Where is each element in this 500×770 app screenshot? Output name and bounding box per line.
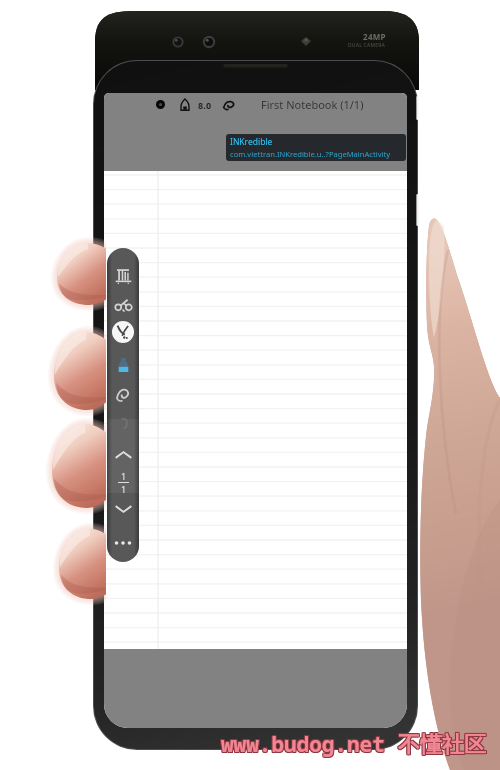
staticText: www.budog.net bbox=[222, 729, 386, 758]
button[interactable]: More options bbox=[107, 531, 139, 555]
staticText: INKredible bbox=[230, 136, 273, 148]
staticText: 不懂社区 bbox=[399, 732, 487, 760]
button[interactable]: Pen style bbox=[219, 95, 239, 115]
button[interactable]: First Notebook (1/1) bbox=[261, 97, 364, 112]
staticText: 不懂社区 bbox=[398, 730, 486, 758]
button[interactable]: Colour bbox=[152, 96, 169, 113]
button[interactable]: Undo bbox=[107, 411, 139, 435]
staticText: 不懂社区 bbox=[397, 732, 485, 760]
staticText: www.budog.net bbox=[221, 730, 385, 759]
staticText: 不懂社区 bbox=[397, 731, 485, 759]
button[interactable]: Pen nib bbox=[176, 96, 193, 113]
staticText: 不懂社区 bbox=[399, 731, 487, 759]
button[interactable]: 1 bbox=[107, 469, 139, 495]
staticText: 不懂社区 bbox=[398, 732, 486, 760]
button[interactable]: Previous page bbox=[107, 443, 139, 467]
button[interactable]: Notebooks bbox=[107, 263, 139, 287]
staticText: www.budog.net bbox=[221, 731, 385, 760]
button[interactable]: Lasso bbox=[107, 382, 139, 406]
staticText: 不懂社区 bbox=[399, 730, 487, 758]
button[interactable]: Pen bbox=[112, 321, 134, 343]
staticText: DUAL CAMERA bbox=[348, 42, 386, 49]
staticText: www.budog.net bbox=[222, 731, 386, 760]
staticText: 1 bbox=[121, 483, 127, 495]
staticText: com.viettran.INKredible.u..?PageMainActi… bbox=[230, 149, 391, 159]
staticText: www.budog.net bbox=[222, 730, 386, 759]
button[interactable]: Highlighter bbox=[107, 353, 139, 377]
staticText: 24MP bbox=[363, 31, 386, 42]
staticText: www.budog.net bbox=[220, 730, 384, 759]
button[interactable]: INKredible bbox=[226, 134, 406, 161]
staticText: 不懂社区 bbox=[398, 731, 486, 759]
staticText: www.budog.net bbox=[220, 729, 384, 758]
button[interactable]: Cut bbox=[107, 294, 139, 318]
button[interactable]: Next page bbox=[107, 496, 139, 520]
staticText: www.budog.net bbox=[220, 731, 384, 760]
staticText: www.budog.net bbox=[221, 729, 385, 758]
button[interactable]: 8.0 bbox=[198, 99, 212, 111]
staticText: 1 bbox=[121, 470, 127, 482]
staticText: 不懂社区 bbox=[397, 730, 485, 758]
